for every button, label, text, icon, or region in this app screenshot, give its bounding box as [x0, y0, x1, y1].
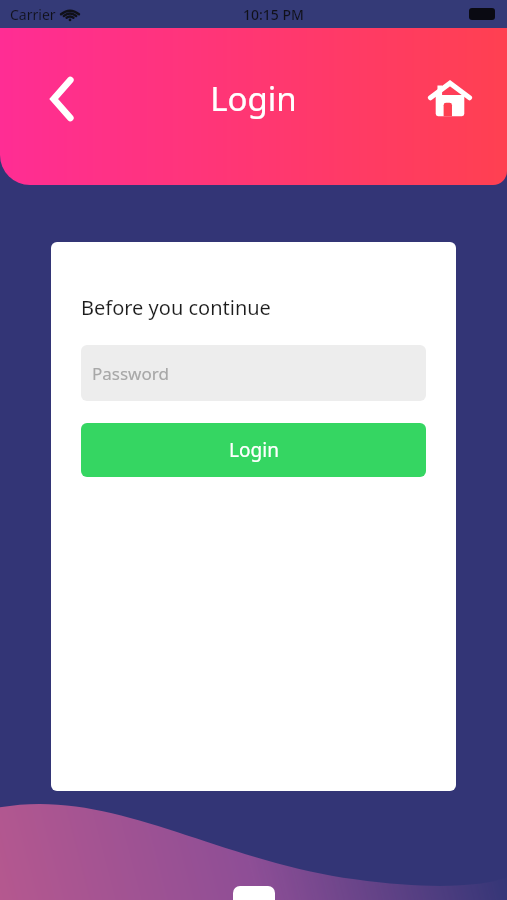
button[interactable]: Password — [81, 345, 426, 401]
staticText: Login — [210, 76, 297, 121]
staticText: Carrier — [10, 5, 56, 24]
staticText: Login — [229, 437, 279, 463]
button[interactable]: Login — [81, 423, 426, 477]
button[interactable]: Home — [423, 72, 477, 126]
staticText: 10:15 PM — [243, 5, 304, 24]
staticText: Password — [92, 362, 169, 385]
staticText: Before you continue — [81, 294, 271, 321]
button[interactable]: Back — [34, 71, 90, 127]
